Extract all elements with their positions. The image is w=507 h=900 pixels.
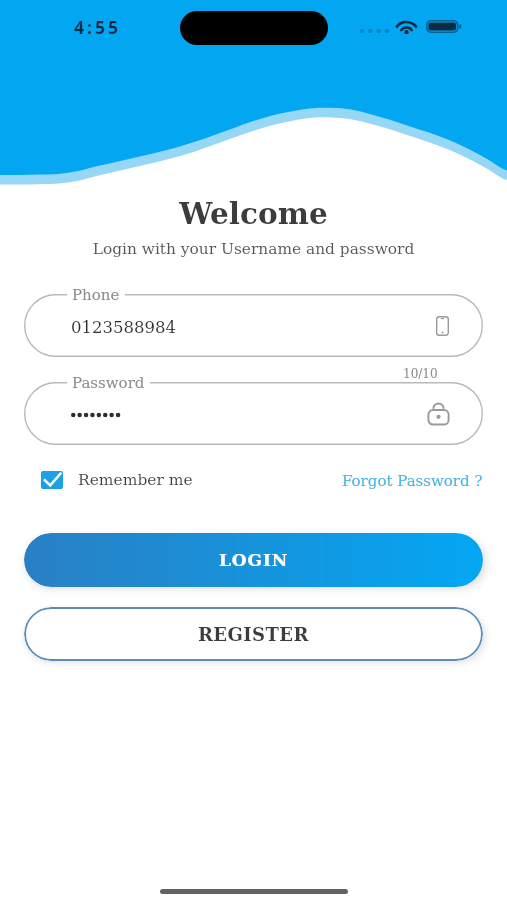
staticText: Password (72, 374, 145, 391)
button[interactable]: Phone (24, 294, 483, 357)
button[interactable]: Password (24, 382, 483, 445)
button[interactable]: LOGIN (24, 533, 483, 587)
staticText: Forgot Password ? (342, 472, 483, 489)
staticText: Welcome (0, 196, 507, 231)
button[interactable]: Remember me (41, 471, 193, 489)
staticText: 4:55 (74, 15, 121, 39)
staticText: 10/10 (403, 367, 438, 381)
staticText: REGISTER (198, 624, 309, 645)
button[interactable]: REGISTER (24, 607, 483, 661)
staticText: Phone (72, 286, 120, 303)
other: Show password (428, 403, 449, 425)
button[interactable]: Forgot Password ? (342, 472, 483, 489)
other: Phone (436, 316, 449, 336)
staticText: Login with your Username and password (0, 240, 507, 258)
staticText: 0123588984 (71, 318, 176, 337)
staticText: Remember me (78, 471, 193, 489)
staticText: LOGIN (219, 550, 289, 570)
